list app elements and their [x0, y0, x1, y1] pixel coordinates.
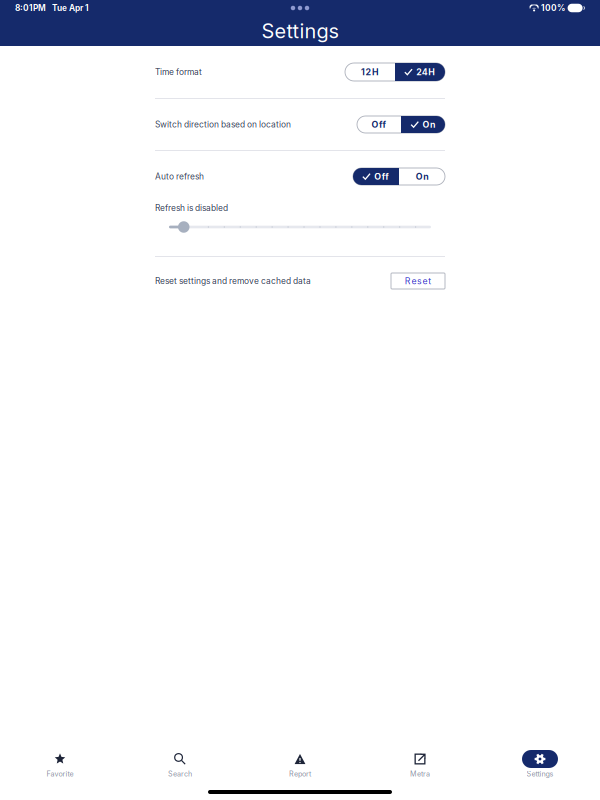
staticText: On [416, 171, 428, 182]
button[interactable]: Favorite [0, 749, 120, 779]
staticText: Favorite [46, 770, 73, 778]
button[interactable]: Switch direction based on location [357, 116, 445, 133]
staticText: On [422, 119, 435, 130]
staticText: Settings [261, 19, 338, 43]
staticText: 24H [416, 67, 435, 77]
button[interactable]: Time format [345, 63, 445, 81]
button[interactable]: Report [240, 749, 360, 779]
staticText: Auto refresh [155, 171, 204, 182]
staticText: 12H [361, 67, 379, 77]
staticText: Time format [155, 67, 202, 77]
staticText: Off [371, 119, 387, 130]
staticText: Reset [405, 276, 431, 286]
staticText: 100% [541, 3, 565, 13]
staticText: Report [289, 770, 311, 778]
staticText: 8:01PM [15, 3, 46, 13]
button[interactable]: Metra [360, 749, 480, 779]
staticText: Tue Apr 1 [52, 3, 89, 13]
button[interactable]: Reset [391, 273, 445, 289]
button[interactable]: Search [120, 749, 240, 779]
button[interactable]: Auto refresh [353, 168, 445, 185]
staticText: Reset settings and remove cached data [155, 276, 311, 286]
staticText: Refresh is disabled [155, 203, 228, 213]
staticText: Switch direction based on location [155, 119, 291, 130]
staticText: Search [168, 770, 192, 778]
staticText: Metra [410, 770, 430, 778]
button[interactable]: Settings [480, 749, 600, 779]
staticText: Settings [526, 770, 553, 778]
staticText: Off [374, 171, 389, 182]
